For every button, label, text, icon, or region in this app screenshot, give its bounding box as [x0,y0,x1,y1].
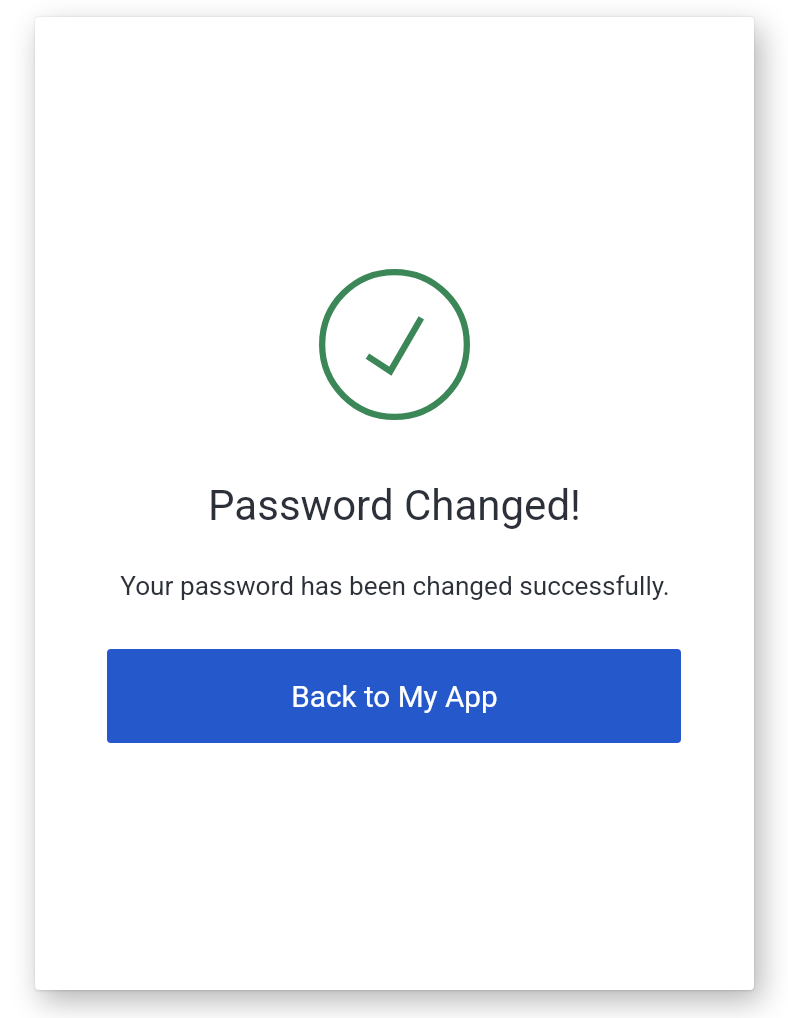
button[interactable]: Back to My App [107,649,681,743]
staticText: Password Changed! [208,481,581,530]
staticText: Back to My App [291,679,498,714]
staticText: Your password has been changed successfu… [120,571,670,602]
